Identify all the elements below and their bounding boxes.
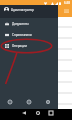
staticText: Документы (12, 22, 29, 26)
button[interactable] (0, 61, 72, 70)
button[interactable] (0, 83, 72, 92)
button[interactable]: Администратор (0, 5, 58, 18)
button[interactable] (0, 28, 72, 37)
staticText: Операции (12, 44, 27, 48)
staticText: Справочники (12, 33, 32, 37)
button[interactable]: Home (33, 109, 42, 117)
button[interactable] (0, 72, 72, 81)
button[interactable]: Recent apps (46, 109, 55, 117)
staticText: Администратор (11, 8, 34, 12)
button[interactable]: Справочники (0, 29, 58, 40)
button[interactable]: Settings (19, 97, 38, 107)
button[interactable]: About (38, 97, 57, 107)
button[interactable]: Back (19, 109, 28, 117)
button[interactable]: Документы (0, 18, 58, 29)
button[interactable] (0, 94, 72, 103)
button[interactable] (0, 105, 72, 109)
button[interactable]: Lock screen (0, 97, 19, 107)
button[interactable] (0, 17, 72, 26)
button[interactable] (0, 50, 72, 59)
button[interactable]: Операции (0, 40, 58, 51)
staticText: 6:38 (64, 1, 70, 5)
button[interactable]: More options (64, 8, 69, 13)
button[interactable] (0, 39, 72, 48)
